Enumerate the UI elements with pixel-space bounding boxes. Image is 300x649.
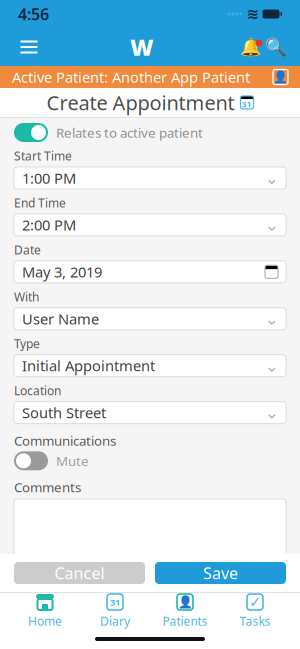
button[interactable]: ✓ — [220, 593, 290, 629]
button[interactable]: Initial Appointment — [14, 355, 286, 377]
button[interactable]: 👤 — [150, 593, 220, 629]
staticText: Cancel — [54, 562, 104, 584]
staticText: ⌄ — [264, 403, 279, 422]
button[interactable]: Home — [10, 593, 80, 629]
staticText: W — [130, 32, 154, 62]
staticText: 31 — [110, 596, 120, 608]
staticText: Date — [14, 242, 41, 258]
staticText: ⌄ — [264, 215, 279, 235]
staticText: ⌄ — [264, 356, 279, 375]
staticText: Initial Appointment — [22, 356, 155, 375]
button[interactable]: South Street — [14, 402, 286, 424]
button[interactable]: 31 — [80, 593, 150, 629]
staticText: Type — [14, 336, 40, 352]
staticText: 🔍 — [265, 37, 287, 57]
staticText: •••• — [226, 7, 242, 21]
staticText: 1:00 PM — [22, 168, 76, 188]
button[interactable]: Active patient — [273, 69, 288, 84]
button[interactable]: User Name — [14, 308, 286, 330]
staticText: ⌄ — [264, 168, 279, 188]
staticText: Mute — [56, 452, 89, 470]
button[interactable]: Cancel — [14, 562, 145, 584]
staticText: Home — [28, 613, 62, 629]
staticText: 🔔 — [239, 37, 261, 57]
button[interactable]: Search — [264, 35, 288, 59]
staticText: Create Appointment — [46, 89, 234, 116]
button[interactable]: May 3, 2019 — [14, 261, 286, 283]
staticText: Diary — [100, 613, 130, 629]
button[interactable]: 2:00 PM — [14, 214, 286, 236]
button[interactable]: Menu — [12, 32, 46, 62]
button[interactable]: Relates to active patient — [14, 123, 48, 142]
staticText: ⌄ — [264, 309, 279, 329]
staticText: End Time — [14, 195, 66, 211]
button[interactable]: Mute — [14, 451, 48, 470]
staticText: Location — [14, 383, 61, 399]
staticText: 👤 — [273, 70, 288, 84]
staticText: With — [14, 289, 39, 305]
staticText: Patients — [162, 613, 207, 629]
staticText: Comments — [14, 478, 81, 496]
staticText: User Name — [22, 309, 99, 328]
button[interactable]: 1:00 PM — [14, 167, 286, 189]
staticText: South Street — [22, 403, 106, 422]
staticText: 2:00 PM — [22, 215, 76, 235]
button[interactable]: Save — [155, 562, 286, 584]
staticText: Relates to active patient — [56, 124, 203, 141]
staticText: Communications — [14, 432, 116, 449]
staticText: ✓ — [249, 594, 261, 610]
staticText: Tasks — [239, 613, 270, 629]
staticText: May 3, 2019 — [22, 262, 102, 282]
staticText: ≋ — [246, 6, 258, 22]
staticText: Save — [203, 562, 238, 584]
staticText: Active Patient: Another App Patient — [12, 67, 250, 87]
staticText: 4:56 — [18, 3, 49, 25]
button[interactable]: Notifications — [238, 34, 264, 60]
staticText: 👤 — [177, 595, 192, 609]
staticText: Start Time — [14, 148, 72, 164]
staticText: 31 — [242, 99, 252, 110]
